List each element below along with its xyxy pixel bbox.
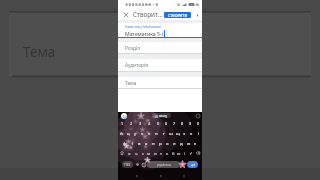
staticText: в xyxy=(138,140,141,146)
button[interactable]: українська xyxy=(147,161,180,168)
button[interactable]: More options xyxy=(193,11,201,19)
staticText: 1 xyxy=(121,121,124,126)
staticText: ч xyxy=(135,150,138,156)
button[interactable]: и xyxy=(152,148,158,158)
staticText: з xyxy=(183,130,186,136)
staticText: Назва класу (обов'язково) xyxy=(125,25,162,29)
button[interactable]: Backspace xyxy=(194,148,202,158)
staticText: ю xyxy=(177,150,181,156)
button[interactable]: п xyxy=(150,138,157,148)
button[interactable]: є xyxy=(192,138,199,148)
button[interactable]: ь xyxy=(164,148,170,158)
staticText: Математика 5-і xyxy=(125,30,164,37)
button[interactable]: я xyxy=(126,148,133,158)
staticText: щ xyxy=(176,130,180,136)
button[interactable]: ї xyxy=(182,148,188,158)
button[interactable]: у xyxy=(132,128,139,138)
staticText: 9 xyxy=(189,121,192,126)
staticText: л xyxy=(173,140,176,146)
button[interactable]: Google xyxy=(121,113,127,119)
staticText: р xyxy=(159,140,162,146)
staticText: д xyxy=(180,140,183,146)
button[interactable]: х xyxy=(188,128,195,138)
staticText: 3 xyxy=(139,121,142,126)
staticText: ь xyxy=(166,150,169,156)
button[interactable]: ш xyxy=(167,128,174,138)
button[interactable]: ю xyxy=(176,148,182,158)
staticText: к xyxy=(141,130,144,136)
button[interactable]: щ xyxy=(174,128,181,138)
staticText: і xyxy=(132,140,134,146)
staticText: ї xyxy=(198,130,200,136)
button[interactable]: д xyxy=(178,138,185,148)
button[interactable]: 1 xyxy=(118,119,127,128)
button[interactable]: г xyxy=(160,128,167,138)
staticText: Тема xyxy=(23,43,56,61)
button[interactable]: ц xyxy=(125,128,132,138)
staticText: п xyxy=(152,140,155,146)
button[interactable]: ф xyxy=(121,138,129,148)
button[interactable]: Close xyxy=(121,10,130,19)
staticText: ф xyxy=(123,140,127,146)
button[interactable]: 6 xyxy=(162,119,170,128)
staticText: й xyxy=(120,130,123,136)
button[interactable]: й xyxy=(118,128,125,138)
button[interactable]: ч xyxy=(133,148,140,158)
button[interactable]: 5 xyxy=(154,119,162,128)
staticText: ж xyxy=(187,140,191,146)
button[interactable]: 0 xyxy=(194,119,202,128)
button[interactable]: н xyxy=(153,128,160,138)
staticText: е xyxy=(148,130,151,136)
button[interactable]: т xyxy=(158,148,164,158)
button[interactable]: ї xyxy=(195,128,202,138)
button[interactable]: л xyxy=(171,138,178,148)
staticText: б xyxy=(172,150,175,156)
button[interactable]: 4 xyxy=(145,119,154,128)
button[interactable]: ж xyxy=(185,138,192,148)
staticText: 2 xyxy=(130,121,133,126)
button[interactable]: с xyxy=(140,148,146,158)
button[interactable]: ґ xyxy=(188,148,194,158)
staticText: х xyxy=(190,130,193,136)
staticText: 6 xyxy=(165,121,168,126)
button[interactable]: 2 xyxy=(127,119,136,128)
button[interactable]: Emoji xyxy=(141,161,147,168)
staticText: я xyxy=(128,150,131,156)
button[interactable]: б xyxy=(170,148,176,158)
staticText: класу xyxy=(159,114,168,118)
button[interactable]: а xyxy=(143,138,150,148)
button[interactable]: класу xyxy=(152,113,171,118)
button[interactable]: к xyxy=(139,128,146,138)
button[interactable]: і xyxy=(129,138,136,148)
button[interactable]: СТВОРИТИ xyxy=(164,12,191,18)
button[interactable]: Settings xyxy=(134,161,140,168)
button[interactable]: р xyxy=(157,138,164,148)
button[interactable]: 3 xyxy=(136,119,145,128)
button[interactable]: 8 xyxy=(178,119,186,128)
button[interactable]: 9 xyxy=(186,119,194,128)
button[interactable]: Navigation xyxy=(132,171,141,180)
button[interactable]: Enter xyxy=(187,161,198,168)
button[interactable]: з xyxy=(181,128,188,138)
button[interactable]: в xyxy=(136,138,143,148)
staticText: ш xyxy=(169,130,173,136)
button[interactable]: м xyxy=(146,148,152,158)
button[interactable]: о xyxy=(164,138,171,148)
staticText: 7 xyxy=(173,121,176,126)
button[interactable]: Shift xyxy=(118,148,126,158)
button[interactable]: ?123 xyxy=(122,161,133,168)
button[interactable]: Navigation xyxy=(156,171,165,180)
button[interactable]: е xyxy=(146,128,153,138)
staticText: у xyxy=(134,130,137,136)
button[interactable]: 7 xyxy=(170,119,178,128)
staticText: Тема xyxy=(125,80,137,87)
staticText: о xyxy=(166,140,169,146)
button[interactable]: Navigation xyxy=(179,171,188,180)
staticText: Аудиторія xyxy=(125,62,149,69)
staticText: Створит… xyxy=(133,10,163,19)
button[interactable]: Voice input xyxy=(195,113,200,118)
staticText: ?123 xyxy=(124,163,131,167)
staticText: г xyxy=(163,130,165,136)
staticText: українська xyxy=(157,163,171,167)
staticText: 4 xyxy=(148,121,151,126)
